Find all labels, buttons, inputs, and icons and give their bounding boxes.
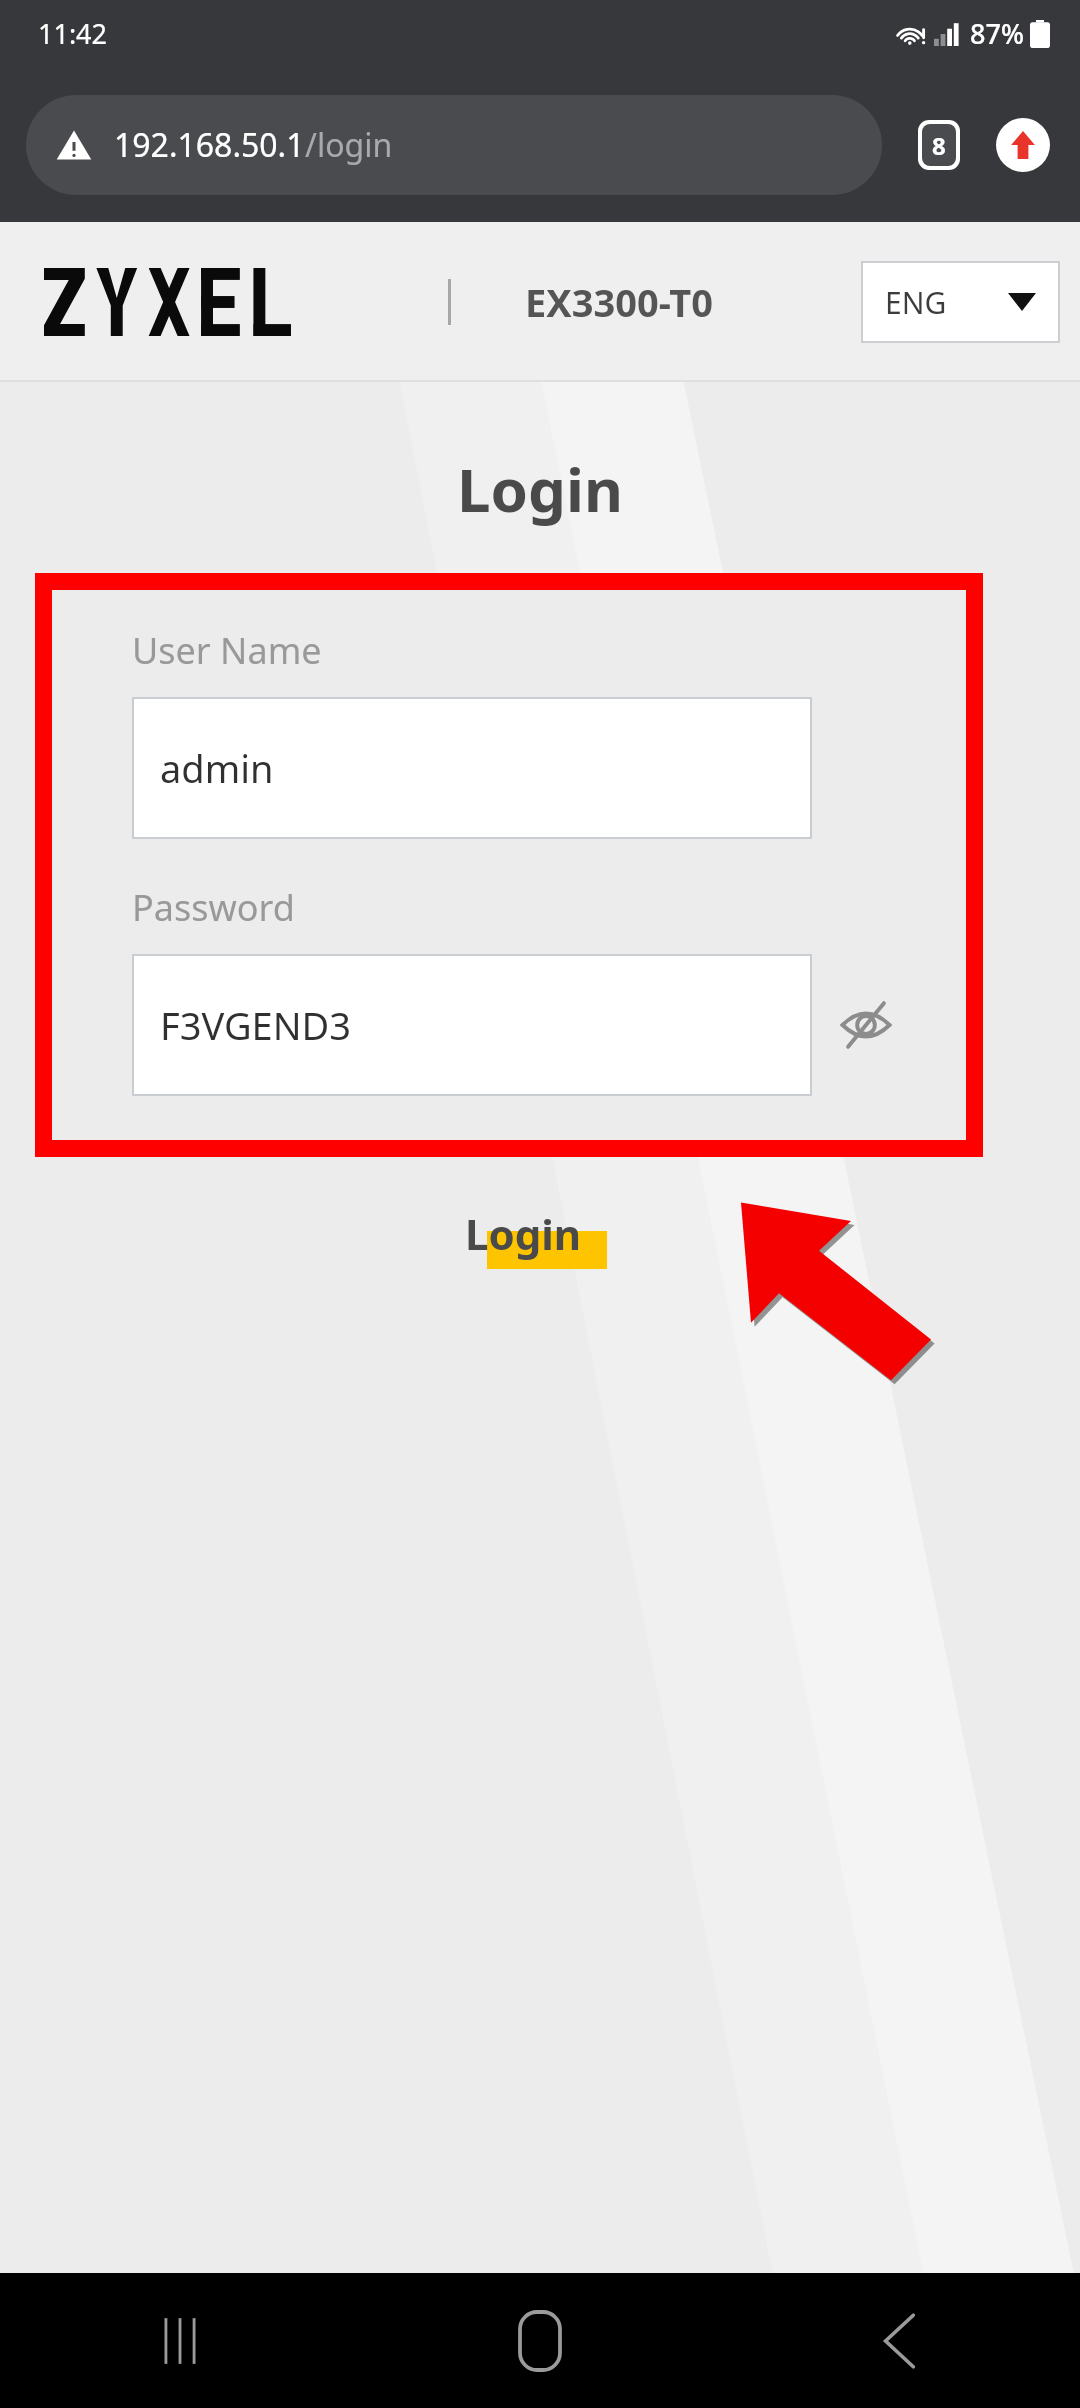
button[interactable]: Login	[465, 1205, 585, 1262]
button[interactable]: Recents	[0, 2273, 360, 2408]
button[interactable]: Tabs, 8 open	[908, 114, 970, 176]
staticText: 192.168.50.1	[114, 123, 305, 167]
button[interactable]: admin	[134, 699, 810, 837]
button[interactable]: ENG	[863, 263, 1058, 341]
button[interactable]: F3VGEND3	[134, 956, 810, 1094]
staticText: Login	[0, 448, 1080, 530]
button[interactable]: Update available	[992, 114, 1054, 176]
button[interactable]: Back	[720, 2273, 1080, 2408]
staticText: EX3300-T0	[525, 276, 713, 328]
staticText: ENG	[885, 282, 947, 323]
button[interactable]: Show password	[834, 993, 898, 1057]
staticText: 8	[932, 129, 946, 162]
staticText: 87%	[970, 15, 1024, 52]
staticText: admin	[160, 742, 274, 794]
staticText: 11:42	[38, 15, 108, 52]
button[interactable]: Home	[360, 2273, 720, 2408]
button[interactable]: 192.168.50.1	[26, 95, 882, 195]
staticText: Password	[132, 883, 295, 932]
staticText: Login	[465, 1205, 582, 1262]
staticText: F3VGEND3	[160, 999, 352, 1051]
staticText: /login	[305, 123, 393, 167]
staticText: User Name	[132, 626, 322, 675]
